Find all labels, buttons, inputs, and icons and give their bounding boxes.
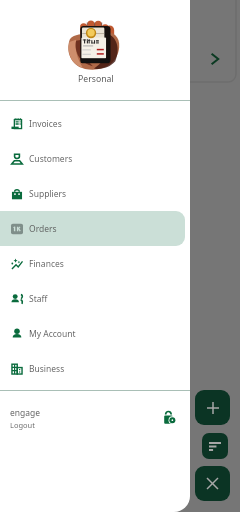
staticText: Customers bbox=[29, 153, 73, 165]
button[interactable]: My Account bbox=[0, 316, 185, 351]
button[interactable]: Open bbox=[211, 53, 219, 65]
button[interactable]: Close bbox=[195, 466, 230, 501]
staticText: engage bbox=[10, 407, 41, 419]
staticText: Suppliers bbox=[29, 188, 67, 200]
button[interactable]: Invoices bbox=[0, 106, 185, 141]
button[interactable]: Finances bbox=[0, 246, 185, 281]
staticText: My Account bbox=[29, 328, 76, 340]
staticText: Business bbox=[29, 363, 65, 375]
button[interactable]: Sort bbox=[202, 433, 228, 459]
staticText: Invoices bbox=[29, 118, 62, 130]
staticText: Finances bbox=[29, 258, 64, 270]
button[interactable]: Orders bbox=[0, 211, 185, 246]
staticText: Personal bbox=[78, 73, 114, 85]
staticText: Logout bbox=[10, 420, 35, 430]
staticText: Orders bbox=[29, 223, 57, 235]
button[interactable]: Business bbox=[0, 351, 185, 386]
button[interactable]: Customers bbox=[0, 141, 185, 176]
button[interactable]: Suppliers bbox=[0, 176, 185, 211]
button[interactable]: Staff bbox=[0, 281, 185, 316]
button[interactable]: engage bbox=[0, 391, 190, 437]
button[interactable]: Add bbox=[195, 390, 230, 425]
staticText: Staff bbox=[29, 293, 48, 305]
